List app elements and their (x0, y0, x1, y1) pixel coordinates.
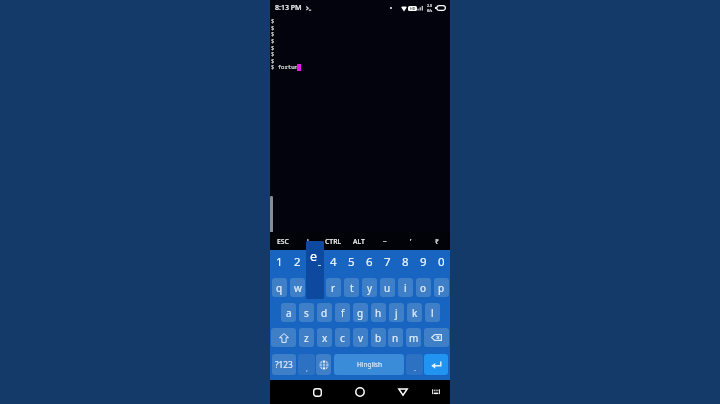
staticText: x (322, 331, 328, 345)
staticText: q (276, 281, 283, 295)
staticText: 8 (402, 254, 409, 270)
button[interactable]: r (326, 278, 341, 297)
staticText: s (304, 306, 309, 320)
button[interactable]: m (406, 328, 421, 347)
button[interactable]: Enter (424, 354, 448, 375)
staticText: a (286, 306, 292, 320)
staticText: 4 (330, 254, 337, 270)
button[interactable]: i (398, 278, 413, 297)
button[interactable]: Hinglish (334, 354, 404, 375)
staticText: z (304, 331, 309, 345)
button[interactable]: k (407, 303, 422, 322)
staticText: 6 (366, 254, 373, 270)
staticText: d (321, 306, 328, 320)
staticText: $ (271, 17, 275, 25)
staticText: Hinglish (357, 360, 382, 369)
button[interactable]: Back (392, 380, 414, 404)
button[interactable]: 9 (414, 251, 432, 272)
button[interactable]: . (406, 354, 423, 375)
button[interactable]: 6 (360, 251, 378, 272)
staticText: 2.0 (427, 3, 433, 8)
button[interactable]: p (434, 278, 449, 297)
staticText: HD (410, 6, 416, 11)
button[interactable]: 1 (270, 251, 288, 272)
button[interactable]: z (299, 328, 314, 347)
staticText: b (375, 331, 382, 345)
staticText: l (431, 306, 434, 320)
staticText: n (392, 331, 399, 345)
button[interactable]: 2 (288, 251, 306, 272)
staticText: i (404, 281, 407, 295)
staticText: u (384, 281, 391, 295)
staticText: p (438, 281, 445, 295)
button[interactable]: f (335, 303, 350, 322)
button[interactable]: 8 (396, 251, 414, 272)
button[interactable]: g (353, 303, 368, 322)
button[interactable]: 7 (378, 251, 396, 272)
staticText: . (414, 364, 416, 374)
button[interactable]: v (353, 328, 368, 347)
staticText: K/s (427, 8, 433, 13)
button[interactable]: CTRL (320, 232, 346, 250)
staticText: m (409, 331, 419, 345)
button[interactable]: o (416, 278, 431, 297)
button[interactable]: Hide keyboard (425, 380, 447, 404)
button[interactable]: ₹ (424, 232, 450, 250)
button[interactable]: ESC (270, 232, 295, 250)
button[interactable]: a (281, 303, 296, 322)
button[interactable]: y (362, 278, 377, 297)
button[interactable]: l (425, 303, 440, 322)
button[interactable]: q (272, 278, 287, 297)
button[interactable]: b (371, 328, 386, 347)
button[interactable]: ’ (398, 232, 424, 250)
button[interactable]: ?123 (272, 354, 296, 375)
button[interactable]: 3 (306, 251, 324, 272)
button[interactable]: s (299, 303, 314, 322)
button[interactable]: c (335, 328, 350, 347)
staticText: $ (271, 37, 275, 45)
staticText: 2 (294, 254, 301, 270)
button[interactable]: Change keyboard language (316, 354, 331, 375)
button[interactable]: 5 (342, 251, 360, 272)
staticText: v (358, 331, 364, 345)
staticText: $ (271, 44, 275, 52)
staticText: k (412, 306, 418, 320)
staticText: $ (271, 24, 275, 32)
staticText: $ (271, 57, 275, 65)
button[interactable]: Shift (271, 328, 296, 347)
button[interactable]: n (388, 328, 403, 347)
button[interactable]: d (317, 303, 332, 322)
button[interactable]: | (295, 232, 320, 250)
button[interactable]: 4 (324, 251, 342, 272)
staticText: 7 (384, 254, 391, 270)
button[interactable]: 0 (432, 251, 450, 272)
staticText: j (395, 306, 398, 320)
staticText: | (306, 237, 310, 246)
button[interactable]: x (317, 328, 332, 347)
staticText: 9 (420, 254, 427, 270)
button[interactable]: t (344, 278, 359, 297)
button[interactable]: Recent apps (306, 380, 328, 404)
staticText: y (367, 281, 373, 295)
button[interactable]: − (372, 232, 398, 250)
button[interactable]: j (389, 303, 404, 322)
staticText: w (294, 281, 302, 295)
button[interactable]: Home (349, 380, 371, 404)
button[interactable]: u (380, 278, 395, 297)
staticText: − (383, 237, 387, 246)
staticText: $ (271, 30, 275, 38)
staticText: r (331, 281, 336, 295)
button[interactable]: h (371, 303, 386, 322)
staticText: 5 (348, 254, 355, 270)
staticText: 3 (312, 254, 319, 270)
staticText: t (350, 281, 354, 295)
staticText: ALT (353, 237, 365, 246)
button[interactable]: ALT (346, 232, 372, 250)
button[interactable]: w (290, 278, 305, 297)
staticText: CTRL (325, 237, 342, 246)
button[interactable]: Backspace (424, 328, 449, 347)
staticText: ?123 (275, 359, 293, 370)
button[interactable]: , (298, 354, 315, 375)
staticText: o (420, 281, 427, 295)
